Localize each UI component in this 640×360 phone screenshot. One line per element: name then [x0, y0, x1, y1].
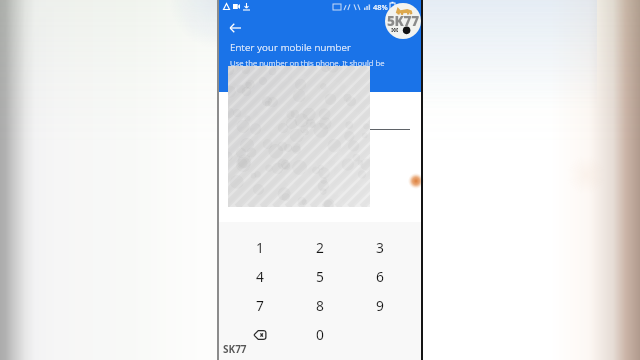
button[interactable]: 3 — [350, 233, 410, 262]
staticText: 5 — [316, 267, 324, 286]
button[interactable]: 9 — [350, 291, 410, 320]
staticText: 3 — [376, 238, 384, 257]
button[interactable]: 5 — [290, 262, 350, 291]
button[interactable]: Back — [224, 17, 245, 38]
button[interactable]: 0 — [290, 320, 350, 349]
button[interactable]: 6 — [350, 262, 410, 291]
staticText: 0 — [316, 325, 324, 344]
staticText: 6 — [376, 267, 384, 286]
staticText: 48% — [373, 2, 388, 11]
button[interactable]: 8 — [290, 291, 350, 320]
staticText: SK77 — [223, 342, 247, 356]
button[interactable]: 2 — [290, 233, 350, 262]
staticText: 1 — [256, 238, 264, 257]
staticText: 4 — [256, 267, 264, 286]
staticText: 7 — [256, 296, 264, 315]
staticText: 2 — [316, 238, 324, 257]
other: Backspace — [254, 330, 266, 340]
staticText: Enter your mobile number — [230, 41, 352, 54]
staticText: Use the number on this phone. It should … — [230, 58, 385, 69]
button[interactable]: 4 — [230, 262, 290, 291]
button[interactable]: 7 — [230, 291, 290, 320]
staticText: 9 — [376, 296, 384, 315]
button[interactable]: 1 — [230, 233, 290, 262]
staticText: 5K77 — [387, 12, 419, 30]
staticText: 8 — [316, 296, 324, 315]
button[interactable]: Backspace — [230, 320, 290, 349]
